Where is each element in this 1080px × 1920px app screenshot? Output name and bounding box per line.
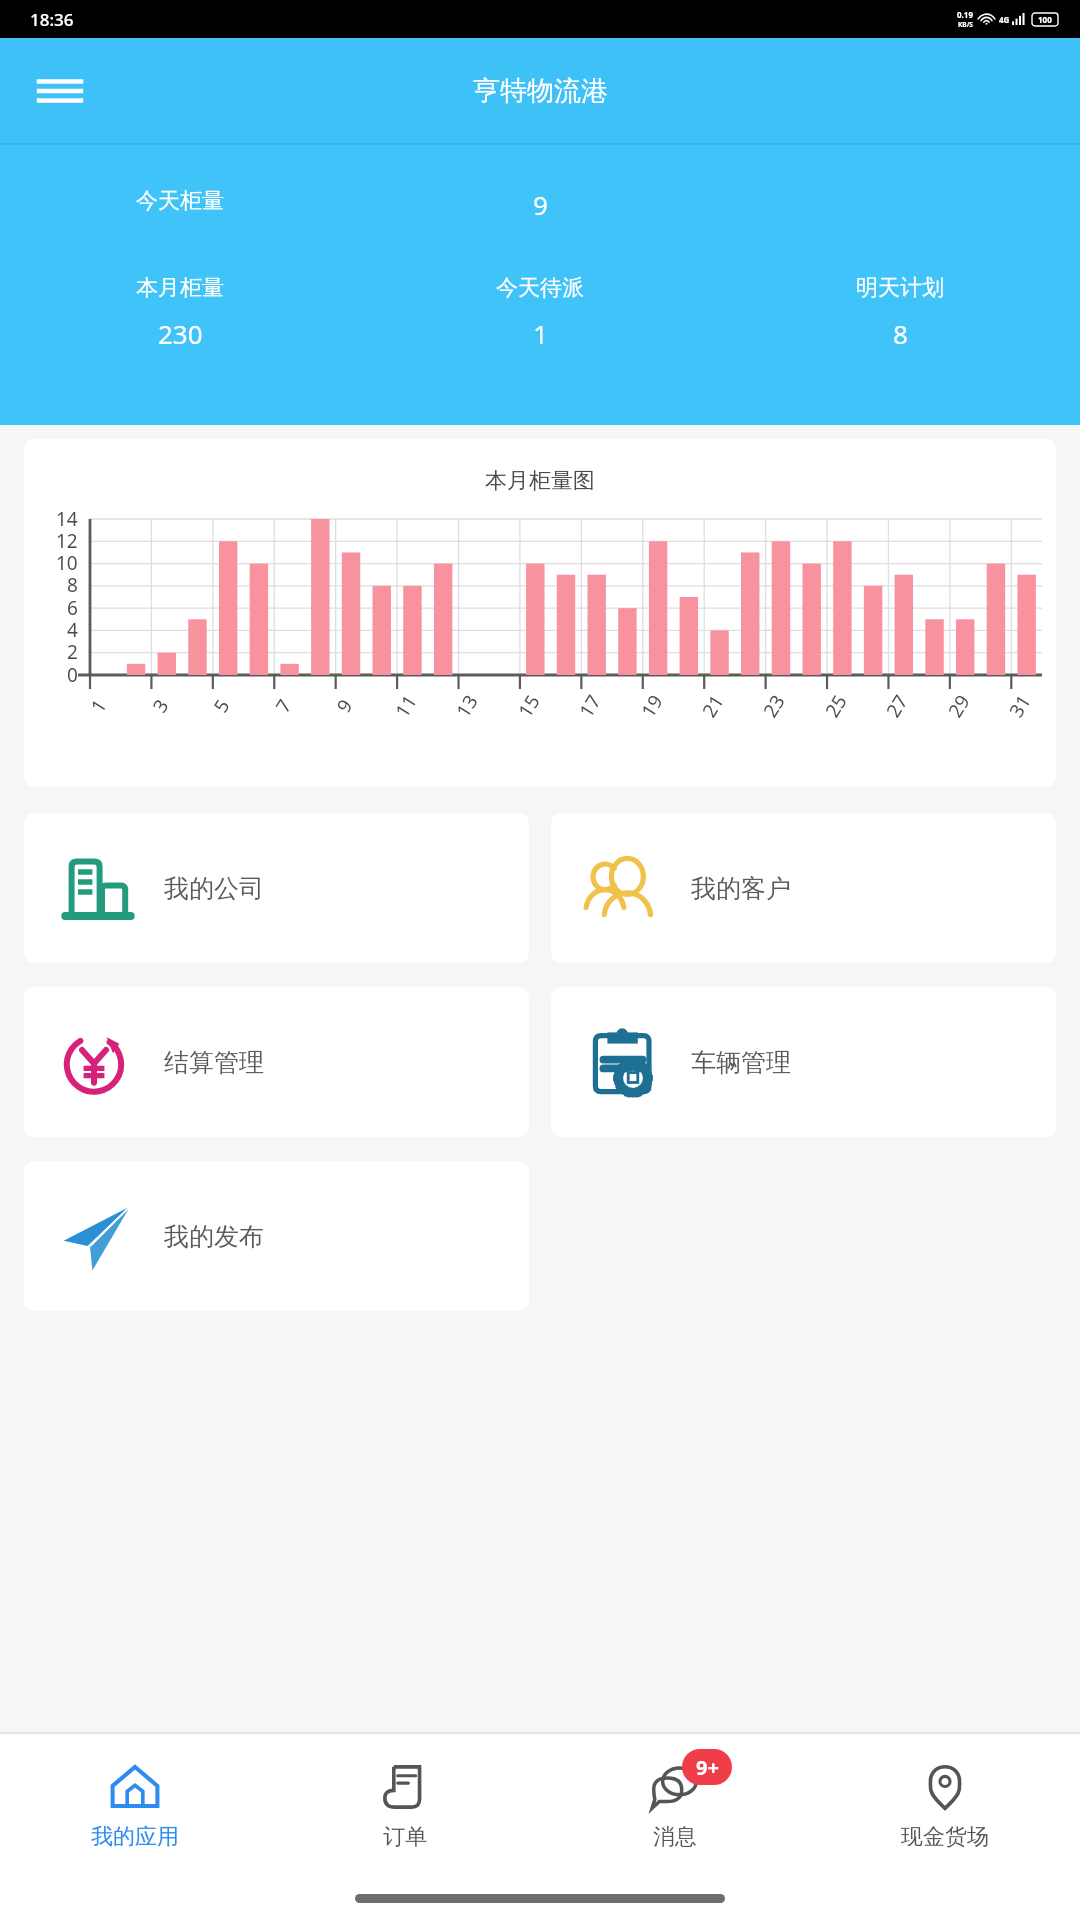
staticText: 4G bbox=[999, 14, 1010, 25]
button[interactable]: 我的客户 bbox=[551, 813, 1056, 963]
button[interactable]: Menu bbox=[32, 63, 88, 119]
button[interactable]: 我的应用 bbox=[0, 1734, 270, 1876]
staticText: 5 bbox=[208, 694, 235, 717]
staticText: 8 bbox=[893, 316, 908, 351]
staticText: 8 bbox=[67, 572, 78, 598]
button[interactable]: 现金货场 bbox=[810, 1734, 1080, 1876]
staticText: 29 bbox=[942, 690, 976, 722]
staticText: 18:36 bbox=[30, 8, 74, 31]
staticText: 31 bbox=[1003, 690, 1037, 722]
staticText: 现金货场 bbox=[901, 1823, 989, 1851]
staticText: 我的应用 bbox=[91, 1823, 179, 1851]
staticText: 消息 bbox=[653, 1823, 697, 1851]
staticText: 0 bbox=[67, 662, 78, 688]
staticText: 6 bbox=[67, 595, 78, 621]
staticText: 今天待派 bbox=[496, 274, 584, 302]
button[interactable]: 我的发布 bbox=[24, 1161, 529, 1311]
button[interactable]: 结算管理 bbox=[24, 987, 529, 1137]
staticText: 车辆管理 bbox=[691, 1047, 791, 1078]
staticText: 订单 bbox=[383, 1823, 427, 1851]
staticText: 亨特物流港 bbox=[473, 74, 608, 108]
staticText: 27 bbox=[880, 690, 914, 722]
button[interactable]: 明天计划 bbox=[720, 274, 1080, 351]
staticText: 100 bbox=[1038, 14, 1052, 25]
staticText: KB/S bbox=[958, 20, 973, 29]
staticText: 2 bbox=[67, 639, 78, 665]
staticText: 1 bbox=[85, 694, 112, 717]
button[interactable]: 本月柜量图 bbox=[24, 439, 1056, 787]
staticText: 9 bbox=[533, 187, 548, 222]
staticText: 23 bbox=[757, 690, 791, 722]
staticText: 我的发布 bbox=[164, 1221, 264, 1252]
staticText: 明天计划 bbox=[856, 274, 944, 302]
staticText: 19 bbox=[635, 690, 669, 722]
button[interactable]: 订单 bbox=[270, 1734, 540, 1876]
button[interactable]: 车辆管理 bbox=[551, 987, 1056, 1137]
button[interactable]: 我的公司 bbox=[24, 813, 529, 963]
staticText: 10 bbox=[56, 550, 78, 576]
staticText: 17 bbox=[573, 690, 607, 722]
staticText: 7 bbox=[270, 694, 297, 717]
staticText: 我的公司 bbox=[164, 873, 264, 904]
staticText: 12 bbox=[56, 528, 78, 554]
staticText: 230 bbox=[158, 316, 203, 351]
staticText: 本月柜量图 bbox=[485, 467, 595, 495]
button[interactable]: 今天待派 bbox=[360, 274, 720, 351]
button[interactable]: 9+ bbox=[540, 1734, 810, 1876]
staticText: 1 bbox=[533, 316, 548, 351]
staticText: 9+ bbox=[696, 1754, 719, 1781]
staticText: 25 bbox=[819, 690, 853, 722]
staticText: 今天柜量 bbox=[136, 187, 224, 215]
staticText: 21 bbox=[696, 690, 730, 722]
staticText: 我的客户 bbox=[691, 873, 791, 904]
staticText: 4 bbox=[67, 617, 78, 643]
staticText: 11 bbox=[389, 690, 423, 722]
button[interactable]: 本月柜量 bbox=[0, 274, 360, 351]
staticText: 本月柜量 bbox=[136, 274, 224, 302]
staticText: 13 bbox=[450, 690, 484, 722]
staticText: 9 bbox=[331, 694, 358, 717]
staticText: 3 bbox=[147, 694, 174, 717]
staticText: 15 bbox=[512, 690, 546, 722]
staticText: 14 bbox=[56, 506, 78, 532]
staticText: 结算管理 bbox=[164, 1047, 264, 1078]
staticText: 0.19 bbox=[957, 9, 973, 20]
